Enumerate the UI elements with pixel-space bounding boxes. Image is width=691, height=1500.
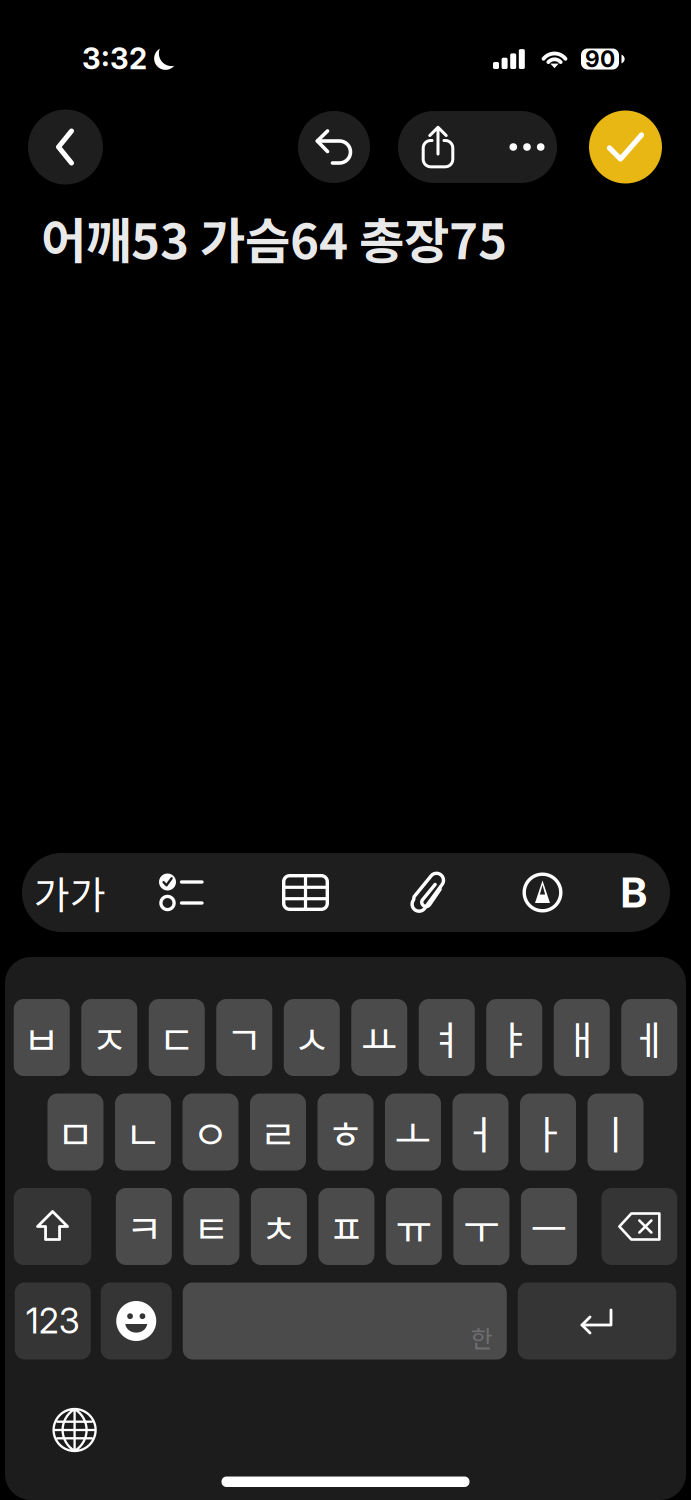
button[interactable]: ㅔ: [621, 999, 677, 1076]
button[interactable]: Emoji: [101, 1282, 172, 1359]
button[interactable]: Space: [183, 1282, 507, 1359]
button[interactable]: Delete: [601, 1188, 677, 1265]
button[interactable]: ㅌ: [183, 1188, 239, 1265]
button[interactable]: ㄹ: [250, 1093, 306, 1170]
staticText: ㅕ: [428, 1008, 465, 1066]
button[interactable]: ㅕ: [419, 999, 475, 1076]
staticText: 한: [471, 1320, 493, 1354]
staticText: ㅍ: [328, 1197, 365, 1255]
staticText: ㄷ: [158, 1008, 195, 1066]
button[interactable]: ㅂ: [14, 999, 70, 1076]
button[interactable]: Markup: [487, 853, 598, 932]
button[interactable]: Share: [398, 111, 478, 183]
staticText: ㄴ: [124, 1103, 161, 1161]
staticText: ㅋ: [125, 1197, 162, 1255]
button[interactable]: ㅊ: [251, 1188, 307, 1265]
button[interactable]: ㅓ: [452, 1093, 508, 1170]
staticText: ㅔ: [631, 1008, 668, 1066]
staticText: 어깨53 가슴64 총장75: [41, 202, 507, 273]
button[interactable]: ㅑ: [486, 999, 542, 1076]
button[interactable]: Switch keyboard: [42, 1397, 108, 1463]
staticText: ㅑ: [496, 1008, 533, 1066]
staticText: ㅅ: [293, 1008, 330, 1066]
button[interactable]: Undo: [298, 111, 370, 183]
button[interactable]: 123: [15, 1282, 91, 1359]
staticText: ㅎ: [327, 1103, 364, 1161]
button[interactable]: ㅎ: [317, 1093, 373, 1170]
staticText: ㅊ: [260, 1197, 297, 1255]
staticText: ㄱ: [226, 1008, 263, 1066]
staticText: ㅁ: [57, 1103, 94, 1161]
button[interactable]: ㅍ: [318, 1188, 374, 1265]
staticText: ㅓ: [462, 1103, 499, 1161]
button[interactable]: ㅐ: [554, 999, 610, 1076]
button[interactable]: Table: [243, 853, 368, 932]
staticText: ㅈ: [91, 1008, 128, 1066]
button[interactable]: ㅋ: [116, 1188, 172, 1265]
staticText: ㅡ: [530, 1197, 567, 1255]
staticText: 90: [585, 45, 615, 73]
button[interactable]: B: [598, 853, 670, 932]
staticText: ㅇ: [192, 1103, 229, 1161]
button[interactable]: ㅜ: [453, 1188, 509, 1265]
button[interactable]: ㅈ: [81, 999, 137, 1076]
staticText: ㄹ: [259, 1103, 296, 1161]
staticText: ㅗ: [394, 1103, 431, 1161]
button[interactable]: ㅣ: [587, 1093, 643, 1170]
staticText: 가가: [34, 864, 106, 920]
button[interactable]: 가가: [22, 853, 118, 932]
button[interactable]: ㅇ: [182, 1093, 238, 1170]
staticText: ㅂ: [23, 1008, 60, 1066]
button[interactable]: Back: [28, 109, 103, 184]
button[interactable]: More: [478, 111, 557, 183]
button[interactable]: ㅗ: [385, 1093, 441, 1170]
button[interactable]: ㅡ: [521, 1188, 577, 1265]
button[interactable]: ㄷ: [149, 999, 205, 1076]
staticText: ㅠ: [395, 1197, 432, 1255]
staticText: 3:32: [82, 41, 147, 76]
button[interactable]: ㅏ: [520, 1093, 576, 1170]
staticText: ㅐ: [563, 1008, 600, 1066]
button[interactable]: ㄴ: [115, 1093, 171, 1170]
button[interactable]: ㄱ: [216, 999, 272, 1076]
button[interactable]: ㅁ: [47, 1093, 103, 1170]
button[interactable]: Shift: [14, 1188, 91, 1265]
button[interactable]: Return: [518, 1282, 676, 1359]
button[interactable]: Attach: [368, 853, 487, 932]
button[interactable]: ㅛ: [351, 999, 407, 1076]
staticText: ㅣ: [597, 1103, 634, 1161]
button[interactable]: ㅠ: [386, 1188, 442, 1265]
staticText: B: [620, 867, 647, 917]
staticText: ㅜ: [463, 1197, 500, 1255]
staticText: ㅏ: [529, 1103, 566, 1161]
staticText: 123: [26, 1300, 80, 1342]
staticText: ㅛ: [361, 1008, 398, 1066]
button[interactable]: Checklist: [118, 853, 243, 932]
staticText: ㅌ: [193, 1197, 230, 1255]
button[interactable]: ㅅ: [284, 999, 340, 1076]
button[interactable]: Done: [589, 110, 662, 183]
